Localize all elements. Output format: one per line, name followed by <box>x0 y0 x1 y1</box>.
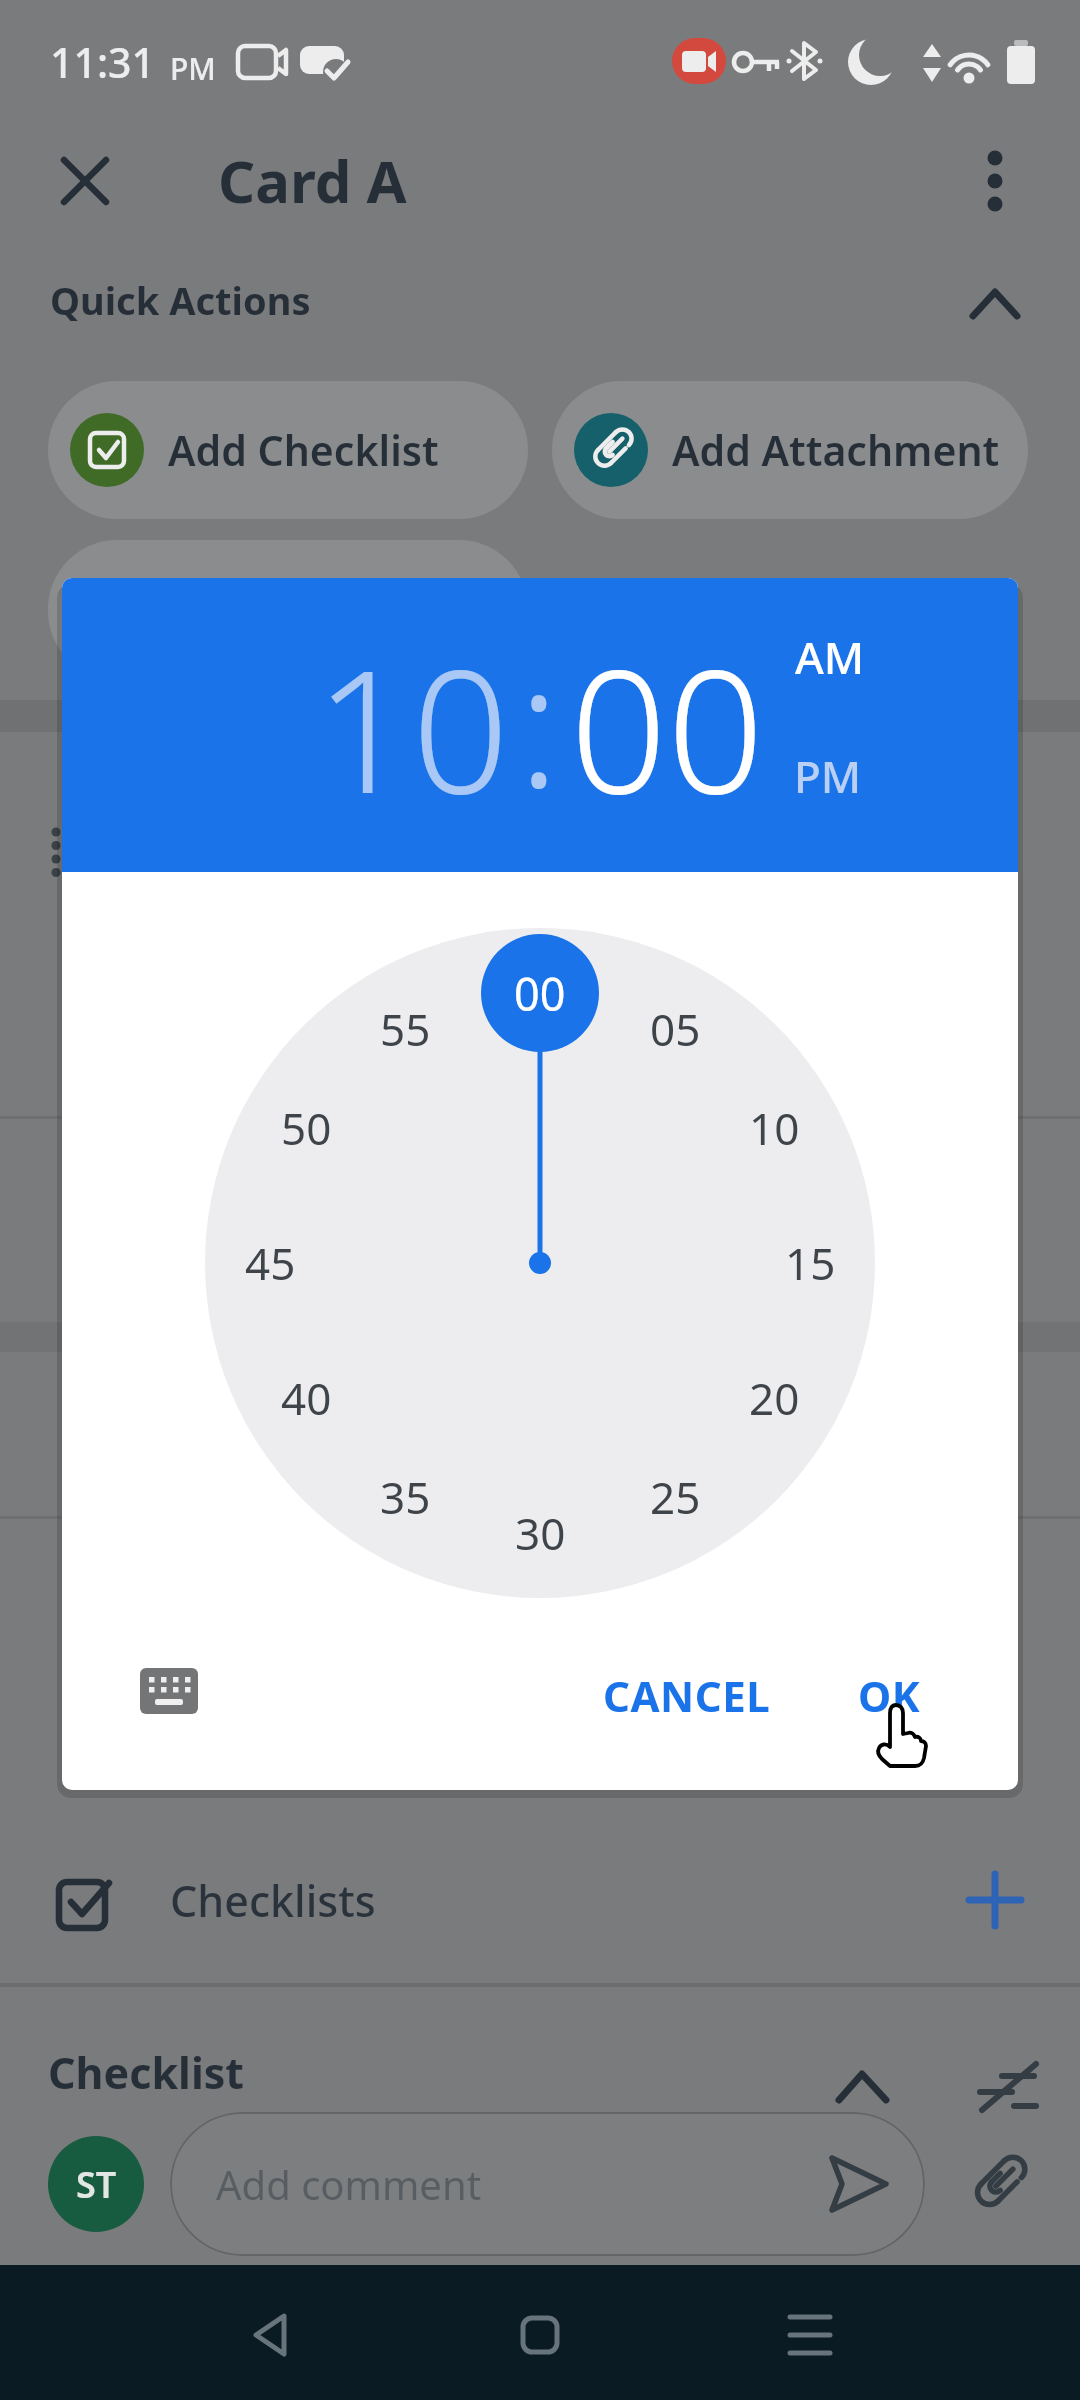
button[interactable] <box>752 726 912 826</box>
button[interactable]: OK <box>824 1650 954 1740</box>
staticText: 10 <box>749 1098 800 1158</box>
staticText: 30 <box>515 1503 566 1563</box>
staticText: 11:31 <box>50 34 155 90</box>
staticText: 00 <box>514 963 566 1024</box>
staticText: 55 <box>380 999 431 1059</box>
staticText: ST <box>76 2160 117 2209</box>
staticText: 25 <box>650 1467 701 1527</box>
staticText: 40 <box>281 1368 332 1428</box>
staticText: 10 <box>315 611 510 811</box>
button[interactable] <box>969 1874 1021 1926</box>
button[interactable] <box>980 150 1010 212</box>
staticText: Checklist <box>48 2043 244 2102</box>
staticText: Quick Actions <box>50 274 311 326</box>
button[interactable] <box>978 2062 1040 2114</box>
button[interactable] <box>170 2112 925 2256</box>
staticText: 50 <box>281 1098 332 1158</box>
button[interactable] <box>826 2154 890 2214</box>
staticText: AM <box>795 627 865 687</box>
staticText: 35 <box>380 1467 431 1527</box>
staticText: 00 <box>570 611 765 811</box>
button[interactable] <box>62 158 108 204</box>
button[interactable] <box>968 2152 1028 2216</box>
staticText: CANCEL <box>603 1667 771 1724</box>
staticText: 05 <box>650 999 701 1059</box>
staticText: 20 <box>749 1368 800 1428</box>
staticText: Add Attachment <box>672 422 1000 478</box>
staticText: OK <box>858 1667 921 1724</box>
staticText: Add comment <box>216 2157 482 2211</box>
button[interactable] <box>788 2314 832 2356</box>
button[interactable] <box>752 607 912 707</box>
button[interactable] <box>250 2312 288 2358</box>
staticText: PM <box>794 746 862 806</box>
button[interactable]: Add Attachment <box>552 381 1028 519</box>
button[interactable]: CANCEL <box>562 1650 812 1740</box>
button[interactable] <box>140 1668 198 1714</box>
staticText: Checklists <box>170 1871 376 1930</box>
staticText: Add Checklist <box>168 422 439 478</box>
staticText: PM <box>170 48 216 89</box>
staticText: Card A <box>218 141 407 220</box>
button[interactable] <box>835 2068 890 2104</box>
staticText: 45 <box>245 1233 296 1293</box>
button[interactable] <box>0 1840 1080 1960</box>
staticText: : <box>518 605 560 805</box>
staticText: 15 <box>785 1233 836 1293</box>
button[interactable] <box>521 2316 559 2354</box>
button[interactable]: Add Checklist <box>48 381 528 519</box>
